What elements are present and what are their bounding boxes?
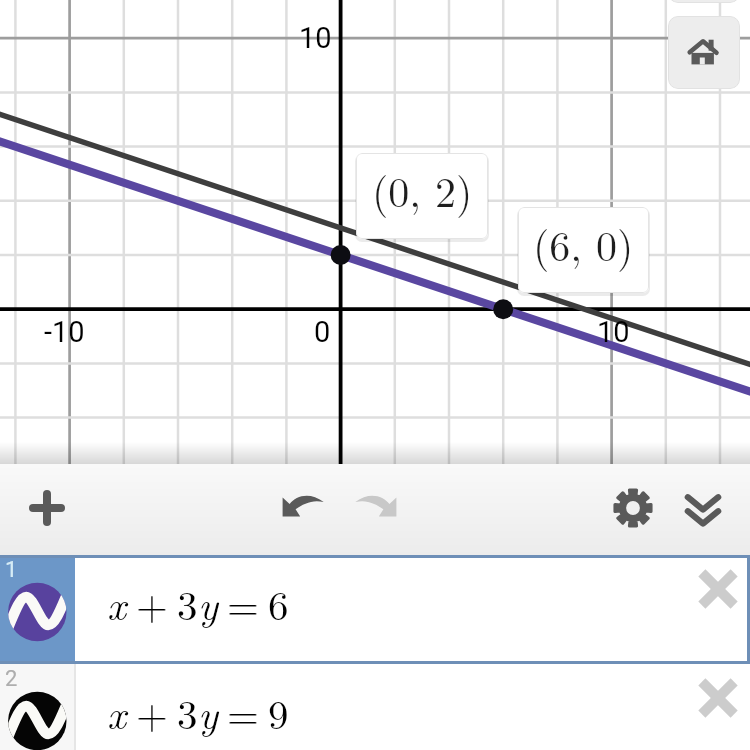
button[interactable]: Home	[668, 16, 740, 89]
staticText: -10	[44, 315, 85, 349]
staticText: +	[136, 574, 168, 632]
staticText: 2	[5, 666, 18, 692]
button[interactable]: Add expression	[13, 474, 81, 542]
staticText: y	[198, 574, 218, 632]
staticText: 3	[177, 683, 198, 741]
staticText: y	[198, 683, 218, 741]
staticText: 0	[314, 315, 331, 349]
staticText: 9	[268, 683, 289, 741]
staticText: x	[107, 574, 127, 632]
button[interactable]: Undo	[269, 471, 337, 539]
staticText: 6	[268, 574, 289, 632]
button[interactable]: Delete expression	[690, 670, 746, 726]
button[interactable]: (0, 2)	[356, 153, 488, 239]
staticText: (0, 2)	[372, 160, 473, 220]
staticText: +	[136, 683, 168, 741]
staticText: 10	[299, 21, 332, 55]
staticText: =	[227, 683, 259, 741]
staticText: (6, 0)	[533, 214, 634, 274]
button[interactable]: Zoom out	[668, 0, 740, 3]
staticText: 10	[597, 315, 630, 349]
staticText: 3	[177, 574, 198, 632]
staticText: =	[227, 574, 259, 632]
button[interactable]: Settings	[599, 474, 667, 542]
staticText: 1	[5, 557, 18, 583]
button[interactable]: 1	[0, 555, 750, 664]
staticText: x	[107, 683, 127, 741]
button[interactable]: 2	[0, 664, 750, 750]
button[interactable]: Redo	[342, 471, 410, 539]
button[interactable]: Collapse list	[669, 476, 737, 544]
button[interactable]: Delete expression	[690, 561, 746, 617]
button[interactable]: (6, 0)	[518, 207, 649, 293]
